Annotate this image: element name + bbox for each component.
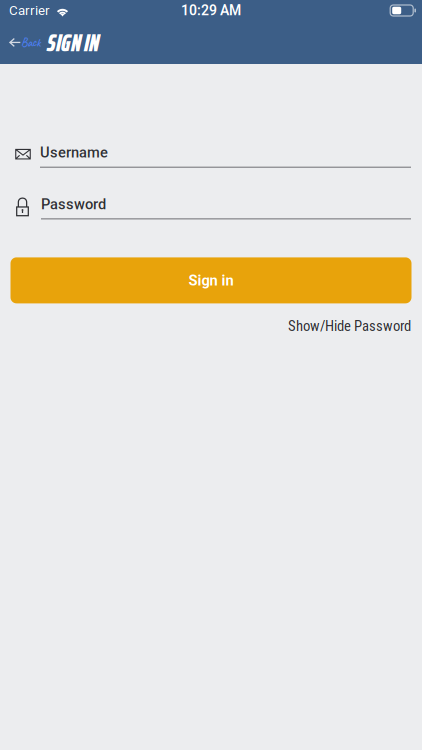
- staticText: Carrier: [9, 3, 50, 18]
- staticText: Back: [21, 35, 40, 50]
- staticText: Sign in: [188, 272, 233, 289]
- staticText: Show/Hide Password: [288, 317, 411, 335]
- button[interactable]: Sign in: [10, 257, 411, 303]
- staticText: SIGN IN: [47, 23, 99, 62]
- button[interactable]: Show/Hide Password: [288, 317, 411, 335]
- staticText: 10:29 AM: [181, 2, 241, 19]
- staticText: Password: [41, 196, 106, 213]
- staticText: Username: [40, 144, 108, 161]
- button[interactable]: Back: [0, 27, 47, 57]
